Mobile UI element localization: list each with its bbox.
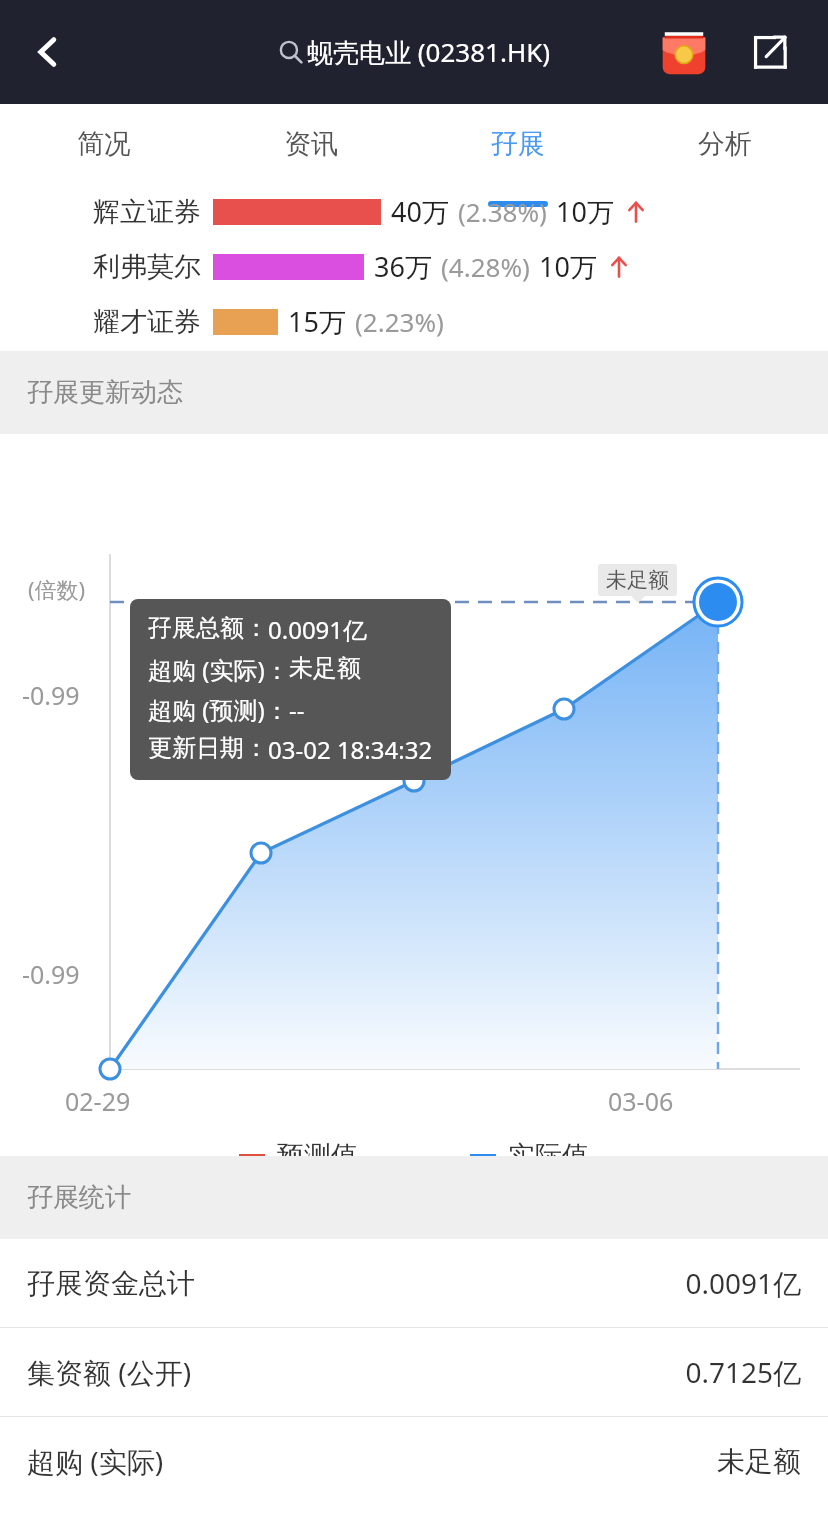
staticText: 15万 <box>288 303 346 340</box>
staticText: 孖展资金总计 <box>27 1266 195 1301</box>
staticText: 辉立证券 <box>93 195 201 229</box>
staticText: (2.23%) <box>355 304 444 339</box>
button[interactable]: 实际值 <box>470 1139 589 1173</box>
button[interactable]: 耀才证券 <box>0 294 828 349</box>
staticText: 预测值 <box>277 1139 358 1173</box>
staticText: 10万 <box>556 193 614 230</box>
staticText: 0.0091亿 <box>685 1264 801 1302</box>
button[interactable]: 利弗莫尔 <box>0 239 828 294</box>
button[interactable]: Share <box>742 24 798 80</box>
staticText: 超购 (实际)： <box>148 653 289 686</box>
staticText: 0.0091亿 <box>268 613 368 646</box>
staticText: 10万 <box>539 248 597 285</box>
staticText: 未足额 <box>717 1444 801 1479</box>
staticText: 分析 <box>698 127 752 161</box>
staticText: 02-29 <box>65 1084 131 1118</box>
staticText: 未足额 <box>289 653 361 683</box>
button[interactable]: 孖展资金总计 <box>0 1239 828 1327</box>
staticText: -0.99 <box>22 678 80 712</box>
button[interactable]: 孖展 <box>414 104 621 184</box>
staticText: 未足额 <box>606 567 669 593</box>
staticText: 36万 <box>374 248 432 285</box>
button[interactable]: 简况 <box>0 104 207 184</box>
button[interactable]: 蚬壳电业 (02381.HK) <box>278 34 551 70</box>
staticText: 超购 (实际) <box>27 1442 164 1480</box>
staticText: 简况 <box>77 127 131 161</box>
staticText: 03-06 <box>608 1084 674 1118</box>
button[interactable]: 预测值 <box>239 1139 358 1173</box>
staticText: 0.7125亿 <box>685 1353 801 1391</box>
staticText: 实际值 <box>508 1139 589 1173</box>
staticText: (4.28%) <box>441 249 530 284</box>
button[interactable]: 超购 (实际) <box>0 1417 828 1505</box>
staticText: 40万 <box>391 193 449 230</box>
staticText: 孖展 <box>491 127 545 161</box>
button[interactable]: Back <box>0 0 96 104</box>
staticText: (倍数) <box>28 574 86 604</box>
button[interactable]: 资讯 <box>207 104 414 184</box>
button[interactable]: 辉立证券 <box>0 184 828 239</box>
button[interactable]: Red packet <box>658 26 710 78</box>
staticText: -- <box>289 693 305 726</box>
staticText: 孖展统计 <box>27 1181 131 1214</box>
staticText: 集资额 (公开) <box>27 1353 192 1391</box>
staticText: 耀才证券 <box>93 305 201 339</box>
staticText: 更新日期： <box>148 733 268 763</box>
staticText: 资讯 <box>284 127 338 161</box>
staticText: 超购 (预测)： <box>148 693 289 726</box>
button[interactable]: 集资额 (公开) <box>0 1328 828 1416</box>
button[interactable]: 分析 <box>621 104 828 184</box>
staticText: 孖展总额： <box>148 613 268 643</box>
staticText: 03-02 18:34:32 <box>268 733 433 766</box>
staticText: (2.38%) <box>458 194 547 229</box>
staticText: -0.99 <box>22 957 80 991</box>
staticText: 孖展更新动态 <box>27 376 183 409</box>
staticText: 蚬壳电业 (02381.HK) <box>307 34 551 70</box>
staticText: 利弗莫尔 <box>93 250 201 284</box>
